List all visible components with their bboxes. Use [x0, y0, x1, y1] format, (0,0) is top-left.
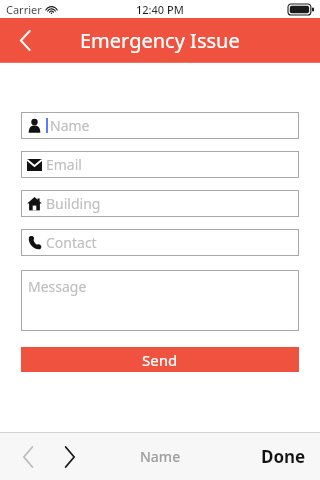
button[interactable]: Next field: [51, 439, 87, 475]
button[interactable]: Previous field: [10, 439, 46, 475]
button[interactable]: Contact: [21, 229, 299, 256]
staticText: Name: [140, 447, 181, 466]
staticText: Carrier: [6, 2, 42, 17]
button[interactable]: Email: [21, 151, 299, 178]
staticText: Contact: [46, 233, 97, 252]
button[interactable]: Send: [21, 347, 299, 372]
button[interactable]: Back: [0, 18, 50, 63]
staticText: Send: [142, 350, 178, 370]
button[interactable]: Message: [21, 270, 299, 331]
staticText: Done: [261, 445, 306, 468]
staticText: Building: [46, 194, 101, 213]
staticText: Emergency Issue: [80, 27, 240, 54]
button[interactable]: Done: [247, 435, 320, 478]
staticText: 12:40 PM: [136, 2, 184, 17]
staticText: Email: [46, 155, 82, 174]
button[interactable]: Name: [21, 112, 299, 139]
button[interactable]: Building: [21, 190, 299, 217]
staticText: Name: [50, 116, 90, 135]
staticText: Message: [28, 277, 87, 296]
